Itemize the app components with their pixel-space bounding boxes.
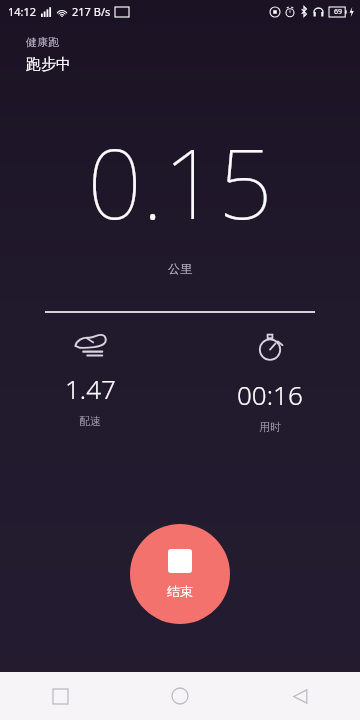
staticText: 跑步中 bbox=[26, 55, 71, 74]
staticText: 69 bbox=[334, 7, 343, 17]
other: 配速 bbox=[73, 331, 107, 355]
staticText: 用时 bbox=[259, 420, 281, 434]
staticText: 00:16 bbox=[237, 377, 303, 412]
staticText: 公里 bbox=[168, 261, 192, 276]
staticText: 217 B/s bbox=[72, 4, 111, 19]
staticText: 配速 bbox=[79, 414, 101, 428]
staticText: 14:12 bbox=[8, 4, 37, 19]
other: 用时 bbox=[255, 331, 285, 361]
staticText: 0.15 bbox=[87, 116, 273, 247]
button[interactable]: Home bbox=[120, 672, 240, 720]
staticText: 结束 bbox=[167, 583, 193, 599]
button[interactable]: Recents bbox=[0, 672, 120, 720]
staticText: 健康跑 bbox=[26, 35, 59, 49]
button[interactable]: Back bbox=[240, 672, 360, 720]
staticText: 1.47 bbox=[65, 371, 116, 406]
button[interactable]: 结束 bbox=[130, 524, 230, 624]
